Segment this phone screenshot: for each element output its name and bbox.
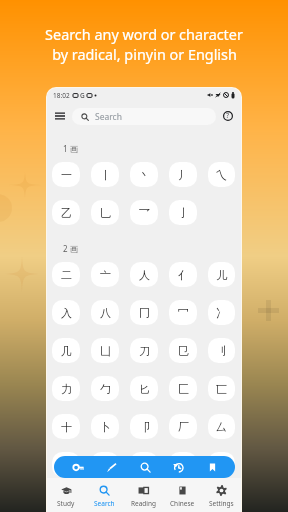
staticText: 乚 — [100, 206, 111, 220]
staticText: 1 画 — [63, 143, 78, 154]
staticText: 乀 — [216, 168, 227, 182]
button[interactable]: 丶 — [130, 162, 158, 187]
staticText: 凵 — [100, 344, 111, 358]
button[interactable]: 厂 — [169, 414, 197, 439]
staticText: 入 — [61, 306, 72, 320]
staticText: Study — [57, 499, 75, 508]
staticText: 廴 — [100, 458, 111, 472]
staticText: 二 — [61, 268, 72, 282]
button[interactable]: Bookmarks — [202, 457, 222, 477]
button[interactable]: Radical key — [68, 457, 88, 477]
staticText: 匚 — [178, 382, 189, 396]
button[interactable]: Search — [72, 108, 216, 125]
button[interactable]: 乀 — [208, 162, 235, 187]
staticText: 刂 — [216, 344, 227, 358]
button[interactable]: 卜 — [91, 414, 119, 439]
staticText: 卩 — [139, 420, 150, 434]
button[interactable]: 儿 — [208, 262, 235, 287]
button[interactable]: 卩 — [130, 414, 158, 439]
staticText: 力 — [61, 382, 72, 396]
button[interactable]: 亠 — [91, 262, 119, 287]
staticText: 匕 — [139, 382, 150, 396]
button[interactable]: 十 — [52, 414, 80, 439]
staticText: 儿 — [216, 268, 227, 282]
staticText: 丨 — [100, 168, 111, 182]
button[interactable]: 乃 — [169, 452, 197, 477]
button[interactable]: 又 — [52, 452, 80, 477]
button[interactable]: 冂 — [130, 300, 158, 325]
button[interactable]: 一 — [52, 162, 80, 187]
staticText: 亠 — [100, 268, 111, 282]
button[interactable]: 八 — [91, 300, 119, 325]
staticText: 厂 — [178, 420, 189, 434]
staticText: Settings — [209, 499, 234, 508]
button[interactable]: Menu — [51, 107, 69, 125]
button[interactable]: 乛 — [130, 200, 158, 225]
button[interactable]: 二 — [52, 262, 80, 287]
button[interactable]: History — [168, 457, 188, 477]
button[interactable]: Reading — [124, 478, 163, 512]
staticText: 几 — [61, 344, 72, 358]
button[interactable]: 刀 — [130, 338, 158, 363]
button[interactable]: 匚 — [169, 376, 197, 401]
staticText: 丶 — [139, 168, 150, 182]
button[interactable]: Search — [85, 478, 124, 512]
staticText: 冖 — [178, 306, 189, 320]
staticText: 丿 — [178, 168, 189, 182]
button[interactable]: Help — [219, 107, 237, 125]
button[interactable]: 几 — [52, 338, 80, 363]
staticText: 18:02 — [53, 91, 70, 100]
button[interactable]: 匕 — [130, 376, 158, 401]
staticText: 卜 — [100, 420, 111, 434]
staticText: 勹 — [100, 382, 111, 396]
button[interactable]: 丨 — [91, 162, 119, 187]
button[interactable]: 㔾 — [169, 338, 197, 363]
staticText: Reading — [131, 499, 157, 508]
staticText: ? — [226, 111, 230, 121]
button[interactable]: 亻 — [169, 262, 197, 287]
staticText: Search — [95, 111, 122, 123]
button[interactable]: 人 — [130, 262, 158, 287]
staticText: 乛 — [139, 206, 150, 220]
button[interactable]: 匸 — [208, 376, 235, 401]
staticText: 匸 — [216, 382, 227, 396]
staticText: G — [80, 91, 85, 100]
button[interactable]: 凵 — [91, 338, 119, 363]
button[interactable]: 力 — [52, 376, 80, 401]
button[interactable]: Chinese — [163, 478, 202, 512]
button[interactable]: 亅 — [169, 200, 197, 225]
staticText: 㔾 — [178, 344, 189, 358]
button[interactable]: 屮 — [130, 452, 158, 477]
staticText: 屮 — [139, 458, 150, 472]
button[interactable]: 厶 — [208, 414, 235, 439]
button[interactable]: 入 — [52, 300, 80, 325]
button[interactable]: Study — [47, 478, 85, 512]
staticText: Search any word or character — [45, 25, 243, 45]
button[interactable]: 冖 — [169, 300, 197, 325]
staticText: Search — [94, 499, 115, 508]
staticText: 亅 — [178, 206, 189, 220]
button[interactable]: 九 — [208, 452, 235, 477]
staticText: 十 — [61, 420, 72, 434]
button[interactable]: 丿 — [169, 162, 197, 187]
button[interactable]: 乚 — [91, 200, 119, 225]
staticText: 一 — [61, 168, 72, 182]
button[interactable]: 冫 — [208, 300, 235, 325]
staticText: 乃 — [178, 458, 189, 472]
button[interactable]: Settings — [202, 478, 241, 512]
staticText: 人 — [139, 268, 150, 282]
staticText: 厶 — [216, 420, 227, 434]
button[interactable]: 廴 — [91, 452, 119, 477]
button[interactable]: 刂 — [208, 338, 235, 363]
staticText: by radical, pinyin or English — [52, 45, 237, 65]
staticText: 冂 — [139, 306, 150, 320]
staticText: 冫 — [216, 306, 227, 320]
staticText: 亻 — [178, 268, 189, 282]
button[interactable]: 乙 — [52, 200, 80, 225]
button[interactable]: 勹 — [91, 376, 119, 401]
button[interactable]: Search — [135, 457, 155, 477]
button[interactable]: Draw — [101, 457, 121, 477]
staticText: Chinese — [170, 499, 195, 508]
